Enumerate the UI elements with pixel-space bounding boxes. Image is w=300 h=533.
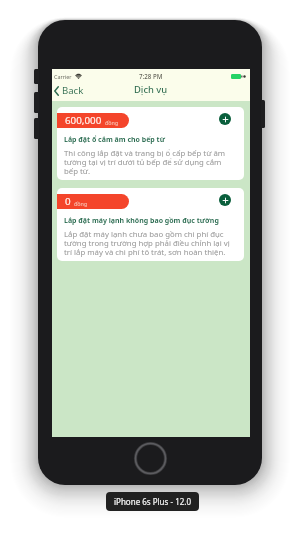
staticText: đồng [105,119,119,126]
staticText: 7:28 PM [139,72,163,80]
staticText: 600,000 [65,114,102,127]
button[interactable]: Back [52,81,88,100]
button[interactable]: Add service [219,113,231,125]
staticText: đồng [74,200,88,207]
button[interactable]: Add service [219,194,231,206]
button[interactable]: 600,000 [57,107,244,180]
staticText: Lắp đặt ổ cắm âm cho bếp từ [64,135,165,145]
staticText: Carrier [54,73,72,80]
staticText: Dịch vụ [134,83,168,96]
staticText: 0 [65,195,71,208]
staticText: Back [62,84,84,97]
staticText: Lắp đặt máy lạnh không bao gồm đục tường [64,216,219,226]
staticText: Lắp đặt máy lạnh chưa bao gồm chi phí đụ… [64,229,230,257]
button[interactable]: 0 [57,188,244,261]
staticText: Thi công lắp đặt và trang bị ổ cấp bếp t… [64,148,230,176]
staticText: iPhone 6s Plus - 12.0 [114,496,191,507]
